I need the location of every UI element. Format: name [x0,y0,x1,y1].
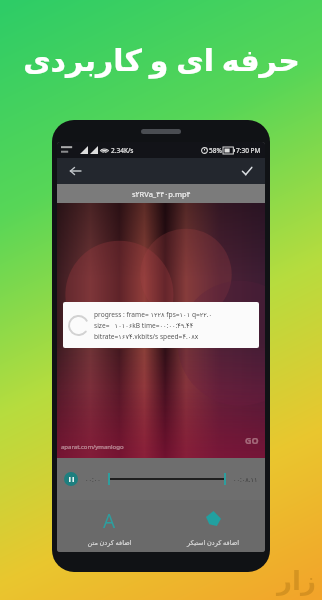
staticText: 7:30 PM [236,146,261,155]
staticText: GO [245,434,259,446]
button[interactable]: Pause [64,472,78,486]
button[interactable]: Done [237,161,257,181]
staticText: 58% [209,146,222,155]
staticText: A [103,508,116,529]
staticText: bitrate=۱۶۷۴.۷kbits/s speed=۴.۰۸x [94,332,199,341]
button[interactable]: A [57,500,161,552]
staticText: حرفه ای و کاربردی [23,39,300,80]
staticText: اضافه کردن استیکر [187,538,239,547]
staticText: ۰۰:۰۸.۱۱ [233,475,258,484]
button[interactable]: اضافه کردن استیکر [161,500,265,552]
staticText: 2.34K/s [111,146,134,155]
staticText: size= ۱۰۱۰۶kB time=۰۰:۰۰:۴۹.۴۴ [94,321,194,330]
staticText: زار [277,566,316,596]
staticText: ۰۰:۰۰ [85,475,101,484]
staticText: progress : frame= ۱۲۲۸ fps=۱۰۱ q=۲۲.۰ [94,310,213,319]
staticText: aparat.com/ymanlogo [61,443,124,451]
staticText: s۲RVa_۴۴۰p.mp۴ [132,189,191,199]
button[interactable]: Back [65,161,85,181]
staticText: اضافه کردن متن [87,538,132,547]
